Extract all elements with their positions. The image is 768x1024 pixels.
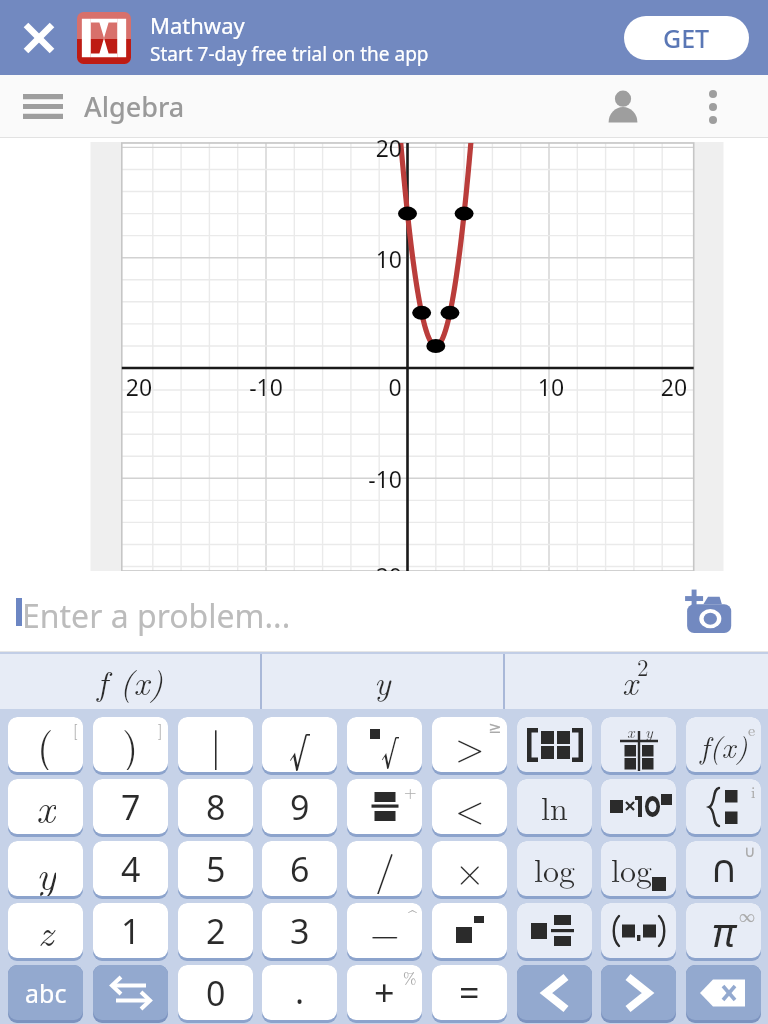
button[interactable]: Move cursor right xyxy=(601,965,676,1023)
button[interactable]: i xyxy=(686,779,761,837)
staticText: 20 xyxy=(342,132,402,163)
button[interactable] xyxy=(432,903,507,961)
button[interactable]: Open menu xyxy=(12,75,74,138)
staticText: ] xyxy=(158,718,163,741)
button[interactable]: ∩ xyxy=(686,841,761,899)
button[interactable]: z xyxy=(8,903,83,961)
button[interactable]: π xyxy=(686,903,761,961)
button[interactable]: x xyxy=(504,652,768,709)
staticText: 8 xyxy=(206,784,226,830)
staticText: log xyxy=(611,846,652,891)
button[interactable]: + xyxy=(347,779,422,837)
staticText: ∞ xyxy=(739,904,756,927)
staticText: Start 7-day free trial on the app xyxy=(150,41,429,67)
staticText: 7 xyxy=(121,784,141,830)
staticText: . xyxy=(295,968,305,1014)
button[interactable]: 7 xyxy=(93,779,168,837)
staticText: √ xyxy=(381,722,399,772)
staticText: √ xyxy=(289,717,310,771)
staticText: ) xyxy=(122,717,139,770)
button[interactable]: log xyxy=(517,841,592,899)
staticText: + xyxy=(374,968,395,1017)
button[interactable]: ln xyxy=(517,779,592,837)
button[interactable]: 5 xyxy=(178,841,253,899)
staticText: -10 xyxy=(342,463,402,494)
button[interactable]: Backspace xyxy=(686,965,761,1023)
staticText: Enter a problem... xyxy=(22,594,291,638)
staticText: 10 xyxy=(521,371,581,402)
button[interactable]: GET xyxy=(624,16,749,60)
button[interactable]: 3 xyxy=(262,903,337,961)
staticText: 10 xyxy=(342,243,402,274)
button[interactable]: 2 xyxy=(178,903,253,961)
button[interactable]: √ xyxy=(262,717,337,775)
staticText: / xyxy=(374,841,396,894)
button[interactable]: 0 xyxy=(178,965,253,1023)
button[interactable]: / xyxy=(347,841,422,899)
staticText: 2 xyxy=(637,650,649,683)
button[interactable]: − xyxy=(347,903,422,961)
staticText: ln xyxy=(541,784,568,829)
staticText: abc xyxy=(25,976,67,1010)
button[interactable]: 9 xyxy=(262,779,337,837)
button[interactable]: Close ad xyxy=(16,15,61,60)
staticText: x xyxy=(36,779,56,832)
button[interactable] xyxy=(517,903,592,961)
button[interactable] xyxy=(601,903,676,961)
staticText: i xyxy=(751,780,756,803)
button[interactable]: y xyxy=(261,652,504,709)
button[interactable]: 1 xyxy=(93,903,168,961)
button[interactable]: 8 xyxy=(178,779,253,837)
button[interactable]: + xyxy=(347,965,422,1023)
staticText: | xyxy=(210,717,222,770)
button[interactable]: log xyxy=(601,841,676,899)
staticText: e xyxy=(748,718,756,741)
button[interactable]: 4 xyxy=(93,841,168,899)
staticText: 20 xyxy=(644,371,704,402)
button[interactable]: f(x) xyxy=(686,717,761,775)
staticText: -10 xyxy=(236,371,296,402)
button[interactable]: √ xyxy=(347,717,422,775)
staticText: x xyxy=(627,720,635,743)
staticText: 0 xyxy=(365,371,425,402)
staticText: > xyxy=(455,718,485,772)
button[interactable]: < xyxy=(432,779,507,837)
staticText: y xyxy=(374,657,391,705)
button[interactable]: × xyxy=(432,841,507,899)
button[interactable]: ) xyxy=(93,717,168,775)
button[interactable]: y xyxy=(8,841,83,899)
staticText: [ xyxy=(73,718,78,741)
staticText: -20 xyxy=(342,560,402,591)
staticText: ∩ xyxy=(710,847,738,891)
staticText: z xyxy=(38,903,54,957)
staticText: ∪ xyxy=(744,842,756,861)
staticText: 20 xyxy=(109,371,169,402)
staticText: f (x) xyxy=(97,657,164,705)
button[interactable]: 6 xyxy=(262,841,337,899)
button[interactable]: f (x) xyxy=(0,652,261,709)
button[interactable]: = xyxy=(432,965,507,1023)
button[interactable]: > xyxy=(432,717,507,775)
staticText: 5 xyxy=(206,846,226,892)
button[interactable]: Scan a problem with the camera xyxy=(668,571,748,652)
button[interactable]: x xyxy=(8,779,83,837)
button[interactable]: ( xyxy=(8,717,83,775)
button[interactable] xyxy=(517,717,592,775)
button[interactable] xyxy=(601,779,676,837)
button[interactable]: More options xyxy=(682,75,744,138)
button[interactable]: Account xyxy=(592,75,654,138)
staticText: ^ xyxy=(408,904,417,927)
staticText: = xyxy=(459,968,480,1017)
button[interactable]: Switch to letters xyxy=(8,965,83,1023)
staticText: 6 xyxy=(290,846,310,892)
button[interactable]: Swap xyxy=(93,965,168,1023)
staticText: 1 xyxy=(121,908,141,954)
staticText: + xyxy=(404,780,417,803)
button[interactable]: Move cursor left xyxy=(517,965,592,1023)
staticText: 2 xyxy=(206,908,226,954)
button[interactable]: . xyxy=(262,965,337,1023)
button[interactable]: x xyxy=(601,717,676,775)
button[interactable]: | xyxy=(178,717,253,775)
staticText: 0 xyxy=(206,970,226,1016)
staticText: log xyxy=(534,846,575,891)
